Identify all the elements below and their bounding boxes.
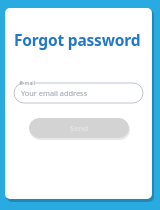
staticText: E-mail [20,79,35,86]
staticText: Forgot password [14,29,141,50]
button[interactable]: Send [29,118,129,138]
staticText: Your email address [21,88,88,98]
staticText: Send [70,123,89,133]
button[interactable]: E-mail [14,79,143,103]
